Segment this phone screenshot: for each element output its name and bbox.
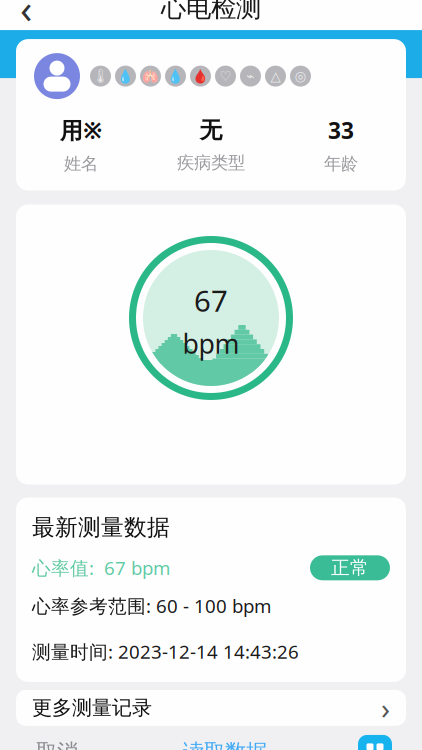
staticText: 💧	[117, 68, 134, 84]
staticText: 无	[199, 116, 222, 144]
staticText: ›	[381, 688, 390, 727]
staticText: 测量时间: 2023-12-14 14:43:26	[32, 639, 299, 664]
staticText: 心电检测	[161, 0, 261, 24]
staticText: 正常	[331, 556, 369, 579]
staticText: 💧	[167, 68, 184, 84]
button[interactable]: Back	[4, 0, 48, 30]
button[interactable]: 读取数据	[169, 729, 281, 750]
staticText: bpm	[182, 326, 239, 361]
staticText: △	[270, 68, 280, 84]
button[interactable]: Grid menu	[358, 735, 392, 750]
staticText: 取消	[36, 739, 78, 750]
staticText: 🩸	[192, 68, 209, 84]
button[interactable]: 取消	[22, 729, 92, 750]
staticText: 最新测量数据	[32, 513, 170, 541]
staticText: 读取数据	[183, 739, 267, 750]
staticText: 用※	[60, 115, 102, 145]
staticText: ‹	[20, 0, 32, 35]
button[interactable]: 正常	[310, 555, 390, 580]
staticText: 心率参考范围: 60 - 100 bpm	[32, 593, 271, 618]
staticText: ◎	[294, 68, 306, 84]
staticText: 年龄	[324, 153, 358, 174]
staticText: 🌡	[92, 68, 109, 84]
staticText: ⌁	[246, 68, 254, 84]
staticText: ♡	[219, 68, 231, 84]
staticText: 疾病类型	[177, 152, 245, 173]
staticText: 67	[194, 281, 228, 320]
button[interactable]: 更多测量记录	[16, 690, 406, 726]
staticText: 🫁	[142, 68, 159, 84]
staticText: 姓名	[64, 153, 98, 174]
staticText: 33	[328, 115, 354, 145]
staticText: 更多测量记录	[32, 696, 152, 720]
staticText: 心率值: 67 bpm	[32, 555, 170, 580]
